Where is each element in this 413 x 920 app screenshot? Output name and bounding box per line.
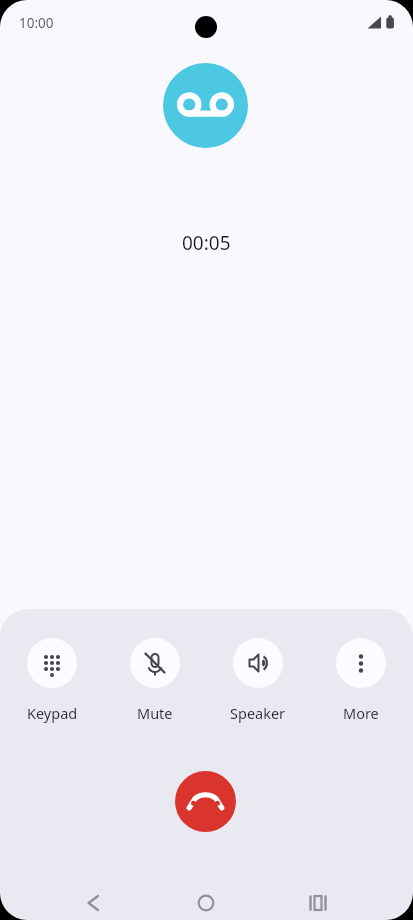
staticText: Mute	[137, 703, 173, 723]
staticText: 00:05	[182, 230, 231, 256]
button[interactable]: Speaker	[218, 638, 298, 723]
button[interactable]	[298, 883, 338, 920]
staticText: Speaker	[230, 703, 286, 723]
staticText: 10:00	[19, 14, 54, 32]
button[interactable]	[186, 883, 226, 920]
button[interactable]	[175, 771, 236, 832]
button[interactable]: Keypad	[12, 638, 92, 723]
button[interactable]	[73, 883, 113, 920]
staticText: Keypad	[27, 703, 78, 723]
staticText: More	[343, 703, 379, 723]
button[interactable]: Mute	[115, 638, 195, 723]
button[interactable]: More	[321, 638, 401, 723]
